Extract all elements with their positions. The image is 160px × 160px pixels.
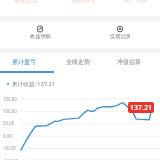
staticText: 收益明细: [30, 33, 51, 40]
staticText: 资产分析: [124, 0, 148, 4]
staticText: -100.00: [3, 158, 19, 160]
staticText: 净值估算: [117, 58, 141, 66]
staticText: 交易记录: [110, 33, 131, 40]
staticText: -50.00: [3, 145, 16, 151]
button[interactable]: 收益明细: [0, 22, 80, 48]
staticText: 50.00: [3, 120, 15, 126]
staticText: 150.00: [3, 96, 17, 102]
button[interactable]: 交易记录: [80, 22, 160, 48]
staticText: 基金定投: [14, 0, 38, 4]
staticText: 累计盈亏: [12, 58, 36, 66]
staticText: 累计收益: 137.21: [12, 80, 55, 88]
staticText: 0.00: [3, 133, 12, 139]
other: 收益明细: [37, 26, 43, 32]
staticText: 137.21: [130, 103, 152, 113]
staticText: 100.00: [3, 108, 17, 114]
button[interactable]: 累计盈亏: [0, 53, 48, 71]
button[interactable]: 业绩走势: [54, 53, 102, 71]
staticText: 业绩走势: [66, 58, 90, 66]
button[interactable]: 净值估算: [105, 53, 153, 71]
other: 交易记录: [117, 26, 123, 32]
staticText: 我的持仓: [72, 0, 96, 4]
